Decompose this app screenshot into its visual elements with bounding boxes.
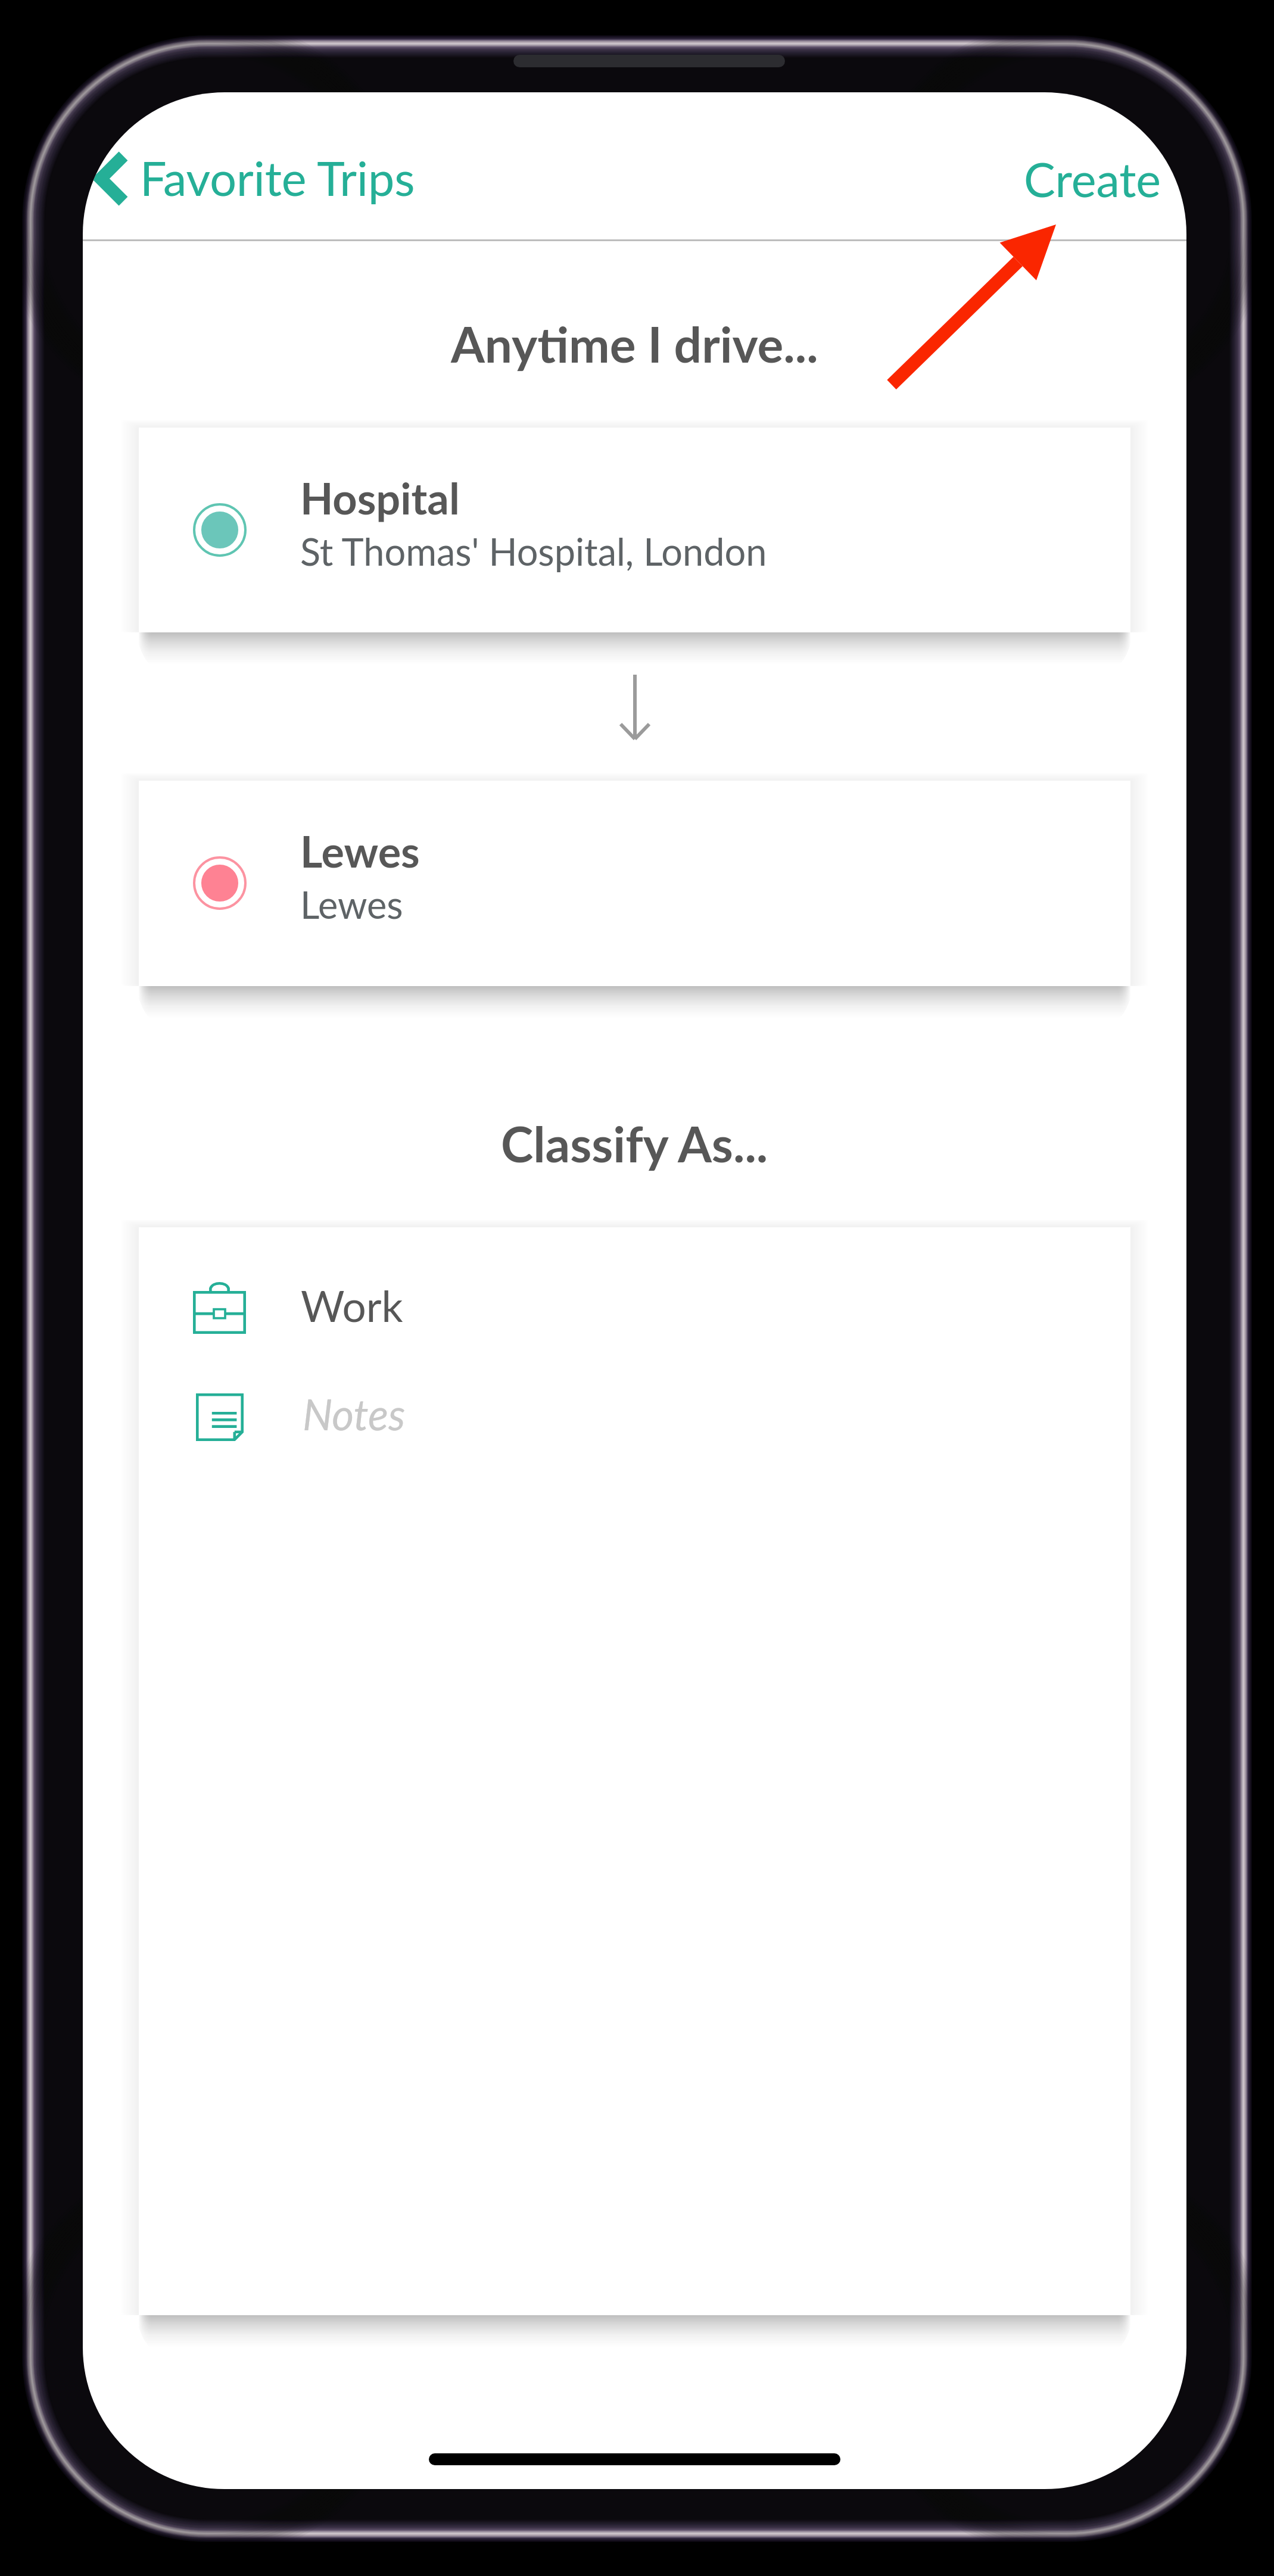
button[interactable]: Lewes [139, 781, 1130, 986]
staticText: Work [301, 1280, 403, 1331]
staticText: Favorite Trips [140, 149, 415, 206]
button[interactable]: Work category [139, 1227, 1130, 2315]
button[interactable]: Notes [139, 1361, 1130, 1457]
staticText: Classify As... [501, 1114, 768, 1172]
button[interactable]: Hospital [139, 428, 1130, 632]
staticText: Lewes [300, 882, 403, 927]
button[interactable]: Create [976, 92, 1186, 239]
button[interactable]: Work category [139, 1263, 1130, 1358]
staticText: St Thomas' Hospital, London [300, 529, 767, 574]
staticText: Create [1024, 151, 1161, 207]
button[interactable]: Back to Favorite Trips [83, 92, 452, 239]
staticText: Anytime I drive... [451, 314, 818, 373]
other: Work category [193, 1291, 246, 1334]
staticText: Hospital [300, 472, 460, 523]
other: Notes [196, 1393, 244, 1441]
staticText: Notes [303, 1389, 406, 1439]
staticText: Lewes [300, 825, 420, 877]
